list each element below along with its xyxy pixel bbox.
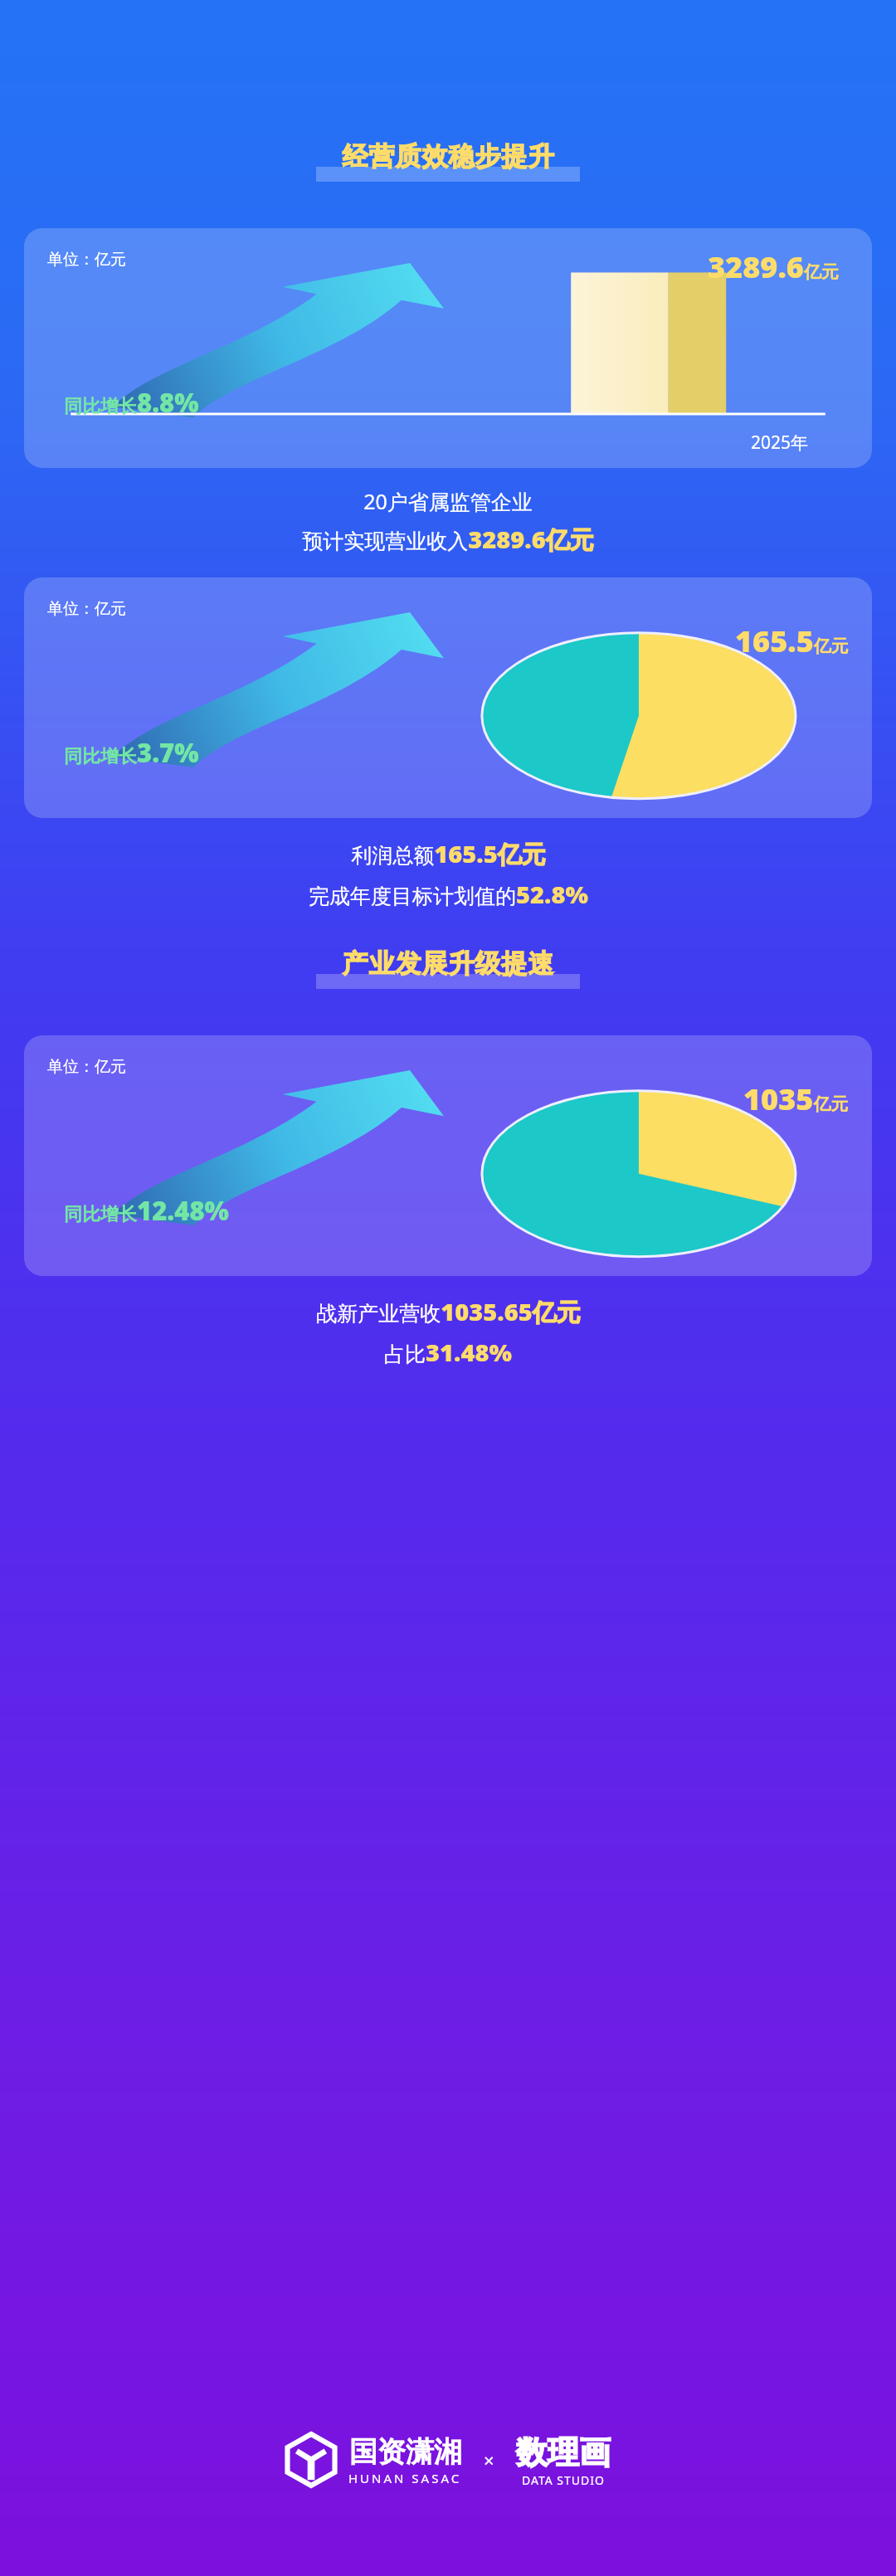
staticText: 2025年 (751, 431, 809, 455)
staticText: 单位：亿元 (47, 599, 126, 619)
button[interactable]: 战新产业营收1035.65亿元 (0, 1295, 896, 1368)
staticText: 占比31.48% (384, 1336, 512, 1368)
staticText: × (484, 2447, 494, 2472)
button[interactable]: 利润总额165.5亿元 (0, 837, 896, 910)
staticText: 3289.6亿元 (708, 246, 839, 287)
button[interactable]: 国资潇湘 HUNAN SASAC x 数理画 DATA STUDIO (0, 2420, 896, 2500)
staticText: 同比增长8.8% (64, 385, 199, 420)
button[interactable]: 经营质效稳步提升 (0, 130, 896, 182)
staticText: 数理画 (516, 2432, 611, 2472)
button[interactable]: 20户省属监管企业 (0, 487, 896, 556)
staticText: 同比增长12.48% (64, 1193, 230, 1228)
staticText: 1035亿元 (743, 1079, 849, 1119)
staticText: 同比增长3.7% (64, 735, 199, 770)
staticText: DATA STUDIO (522, 2472, 605, 2488)
staticText: 利润总额165.5亿元 (351, 837, 546, 870)
staticText: 完成年度目标计划值的52.8% (309, 878, 588, 910)
button[interactable]: 单位：亿元 (24, 577, 872, 818)
staticText: 单位：亿元 (47, 250, 126, 270)
staticText: 20户省属监管企业 (363, 487, 533, 515)
staticText: 经营质效稳步提升 (342, 140, 554, 173)
button[interactable]: 产业发展升级提速 (0, 937, 896, 989)
staticText: 预计实现营业收入3289.6亿元 (302, 523, 594, 556)
button[interactable]: 单位：亿元 (24, 228, 872, 468)
staticText: 国资潇湘 (349, 2434, 462, 2470)
staticText: 战新产业营收1035.65亿元 (316, 1295, 581, 1328)
button[interactable]: 单位：亿元 (24, 1035, 872, 1276)
staticText: 单位：亿元 (47, 1057, 126, 1077)
staticText: HUNAN SASAC (348, 2470, 462, 2486)
staticText: 165.5亿元 (735, 621, 849, 661)
staticText: 产业发展升级提速 (342, 947, 554, 980)
